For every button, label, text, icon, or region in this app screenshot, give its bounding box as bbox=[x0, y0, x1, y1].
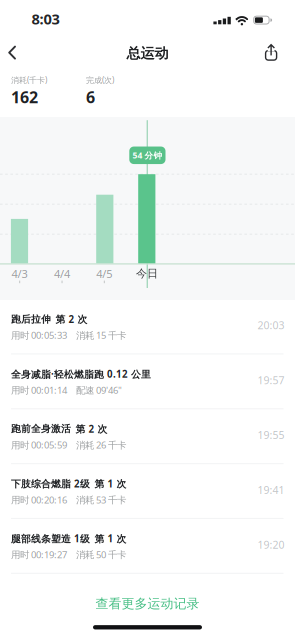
button[interactable] bbox=[258, 41, 284, 64]
staticText: 4/5 bbox=[96, 266, 112, 281]
staticText: 第 1 次 bbox=[94, 477, 126, 490]
staticText: 消耗 50 千卡 bbox=[76, 548, 126, 561]
button[interactable]: 全身减脂·轻松燃脂跑 0.12 公里 bbox=[0, 354, 295, 409]
staticText: 第 2 次 bbox=[75, 422, 107, 435]
button[interactable]: 下肢综合燃脂 2级 bbox=[0, 464, 295, 519]
staticText: 用时 00:19:27 bbox=[11, 548, 67, 561]
staticText: 跑后拉伸 bbox=[11, 313, 51, 325]
button[interactable]: 跑后拉伸 bbox=[0, 300, 295, 354]
staticText: 19:20 bbox=[257, 537, 284, 552]
staticText: 消耗 26 千卡 bbox=[76, 438, 126, 451]
staticText: 19:41 bbox=[257, 483, 284, 497]
staticText: 用时 00:05:59 bbox=[11, 438, 67, 451]
button[interactable]: 跑前全身激活 bbox=[0, 409, 295, 464]
staticText: 4/3 bbox=[12, 266, 28, 281]
staticText: 腿部线条塑造 1级 bbox=[11, 532, 90, 545]
staticText: 跑前全身激活 bbox=[11, 423, 71, 435]
staticText: 6 bbox=[86, 86, 95, 108]
staticText: 54 分钟 bbox=[132, 149, 162, 161]
button[interactable]: 腿部线条塑造 1级 bbox=[0, 519, 295, 574]
staticText: 查看更多运动记录 bbox=[95, 596, 199, 612]
staticText: 19:55 bbox=[257, 428, 284, 442]
button[interactable]: 查看更多运动记录 bbox=[67, 592, 227, 616]
button[interactable] bbox=[0, 43, 36, 62]
staticText: 用时 00:05:33 bbox=[11, 329, 67, 342]
staticText: 消耗 53 千卡 bbox=[76, 493, 126, 506]
staticText: 20:03 bbox=[257, 318, 284, 332]
staticText: 用时 00:01:14 bbox=[11, 384, 67, 396]
staticText: 162 bbox=[11, 86, 38, 108]
staticText: 4/4 bbox=[54, 266, 70, 281]
staticText: 下肢综合燃脂 2级 bbox=[11, 477, 90, 490]
staticText: 第 1 次 bbox=[94, 532, 126, 545]
staticText: 完成(次) bbox=[86, 75, 114, 85]
staticText: 19:57 bbox=[257, 373, 284, 387]
staticText: 消耗 15 千卡 bbox=[76, 329, 126, 342]
staticText: 今日 bbox=[136, 267, 158, 280]
staticText: 消耗(千卡) bbox=[11, 75, 47, 85]
staticText: 8:03 bbox=[31, 9, 59, 29]
staticText: 第 2 次 bbox=[55, 312, 87, 326]
staticText: 配速 09'46" bbox=[76, 384, 122, 396]
staticText: 总运动 bbox=[126, 45, 168, 62]
staticText: 用时 00:20:16 bbox=[11, 493, 67, 506]
staticText: 全身减脂·轻松燃脂跑 0.12 公里 bbox=[11, 367, 151, 381]
